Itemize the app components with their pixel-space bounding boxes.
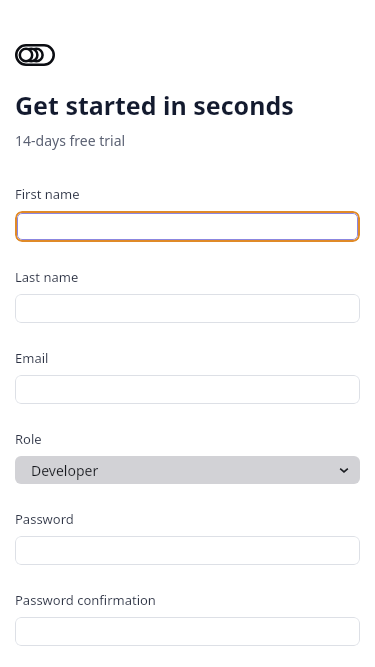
button[interactable]: Developer (15, 456, 360, 484)
staticText: Developer (31, 461, 99, 480)
staticText: Last name (15, 268, 79, 286)
button[interactable] (15, 617, 360, 646)
staticText: 14-days free trial (15, 131, 126, 150)
button[interactable]: Home logo (15, 44, 55, 66)
staticText: Get started in seconds (15, 88, 294, 122)
button[interactable] (15, 294, 360, 323)
staticText: First name (15, 185, 80, 203)
staticText: Role (15, 430, 42, 448)
staticText: Email (15, 349, 49, 367)
button[interactable] (15, 536, 360, 565)
button[interactable] (15, 375, 360, 404)
button[interactable] (17, 213, 358, 240)
staticText: Password confirmation (15, 591, 156, 609)
staticText: Password (15, 510, 74, 528)
